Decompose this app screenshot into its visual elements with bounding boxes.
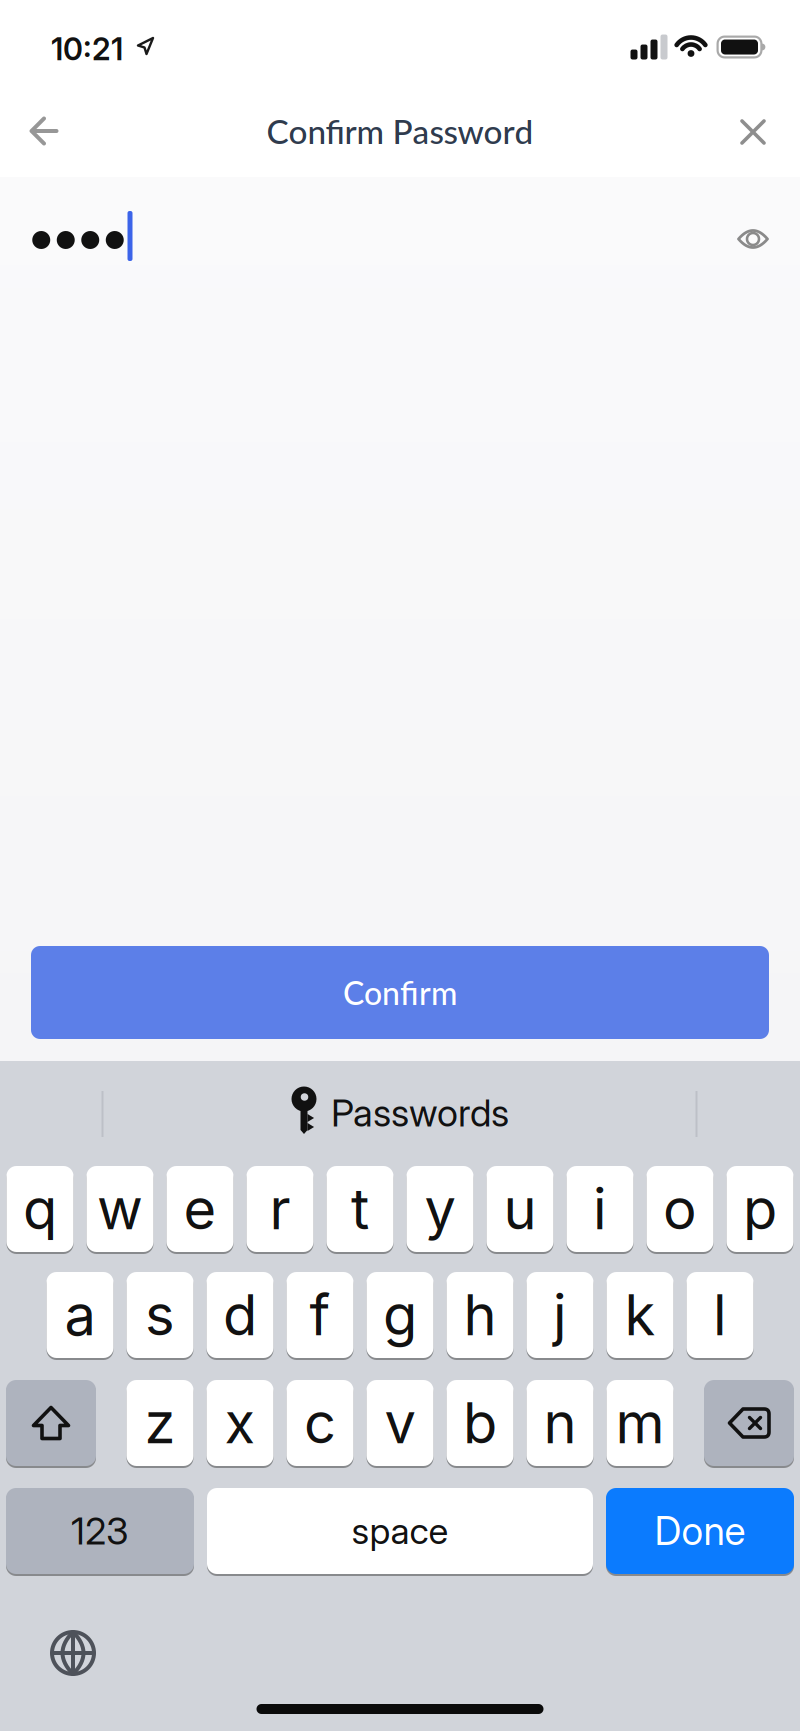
staticText: 10:21: [51, 30, 123, 67]
staticText: a: [64, 1281, 95, 1349]
button[interactable]: r: [246, 1166, 313, 1252]
staticText: n: [543, 1389, 576, 1457]
button[interactable]: k: [606, 1272, 673, 1358]
button[interactable]: y: [406, 1166, 473, 1252]
button[interactable]: g: [366, 1272, 433, 1358]
button[interactable]: n: [526, 1380, 593, 1466]
button[interactable]: j: [526, 1272, 593, 1358]
staticText: s: [145, 1281, 175, 1349]
button[interactable]: p: [726, 1166, 793, 1252]
button[interactable]: Passwords: [291, 1089, 509, 1137]
staticText: r: [269, 1175, 290, 1243]
button[interactable]: Delete: [704, 1380, 794, 1466]
button[interactable]: space: [207, 1488, 593, 1574]
button[interactable]: 123: [6, 1488, 194, 1574]
button[interactable]: Show password: [725, 211, 781, 267]
button[interactable]: Close: [723, 102, 783, 162]
button[interactable]: s: [126, 1272, 193, 1358]
staticText: i: [593, 1175, 607, 1243]
button[interactable]: b: [446, 1380, 513, 1466]
button[interactable]: t: [326, 1166, 393, 1252]
staticText: o: [663, 1175, 697, 1243]
staticText: b: [463, 1389, 497, 1457]
staticText: u: [503, 1175, 536, 1243]
button[interactable]: z: [126, 1380, 193, 1466]
button[interactable]: x: [206, 1380, 273, 1466]
button[interactable]: f: [286, 1272, 353, 1358]
staticText: c: [304, 1389, 336, 1457]
staticText: Done: [654, 1508, 745, 1554]
button[interactable]: o: [646, 1166, 713, 1252]
staticText: k: [624, 1281, 655, 1349]
button[interactable]: Done: [606, 1488, 794, 1574]
staticText: t: [351, 1175, 369, 1243]
staticText: y: [424, 1175, 455, 1243]
staticText: g: [383, 1281, 417, 1349]
staticText: Confirm: [343, 973, 457, 1012]
staticText: z: [144, 1389, 175, 1457]
button[interactable]: v: [366, 1380, 433, 1466]
staticText: x: [224, 1389, 255, 1457]
button[interactable]: d: [206, 1272, 273, 1358]
button[interactable]: a: [46, 1272, 113, 1358]
button[interactable]: h: [446, 1272, 513, 1358]
button[interactable]: Confirm: [31, 946, 769, 1039]
button[interactable]: Shift: [6, 1380, 96, 1466]
staticText: p: [743, 1175, 777, 1243]
staticText: 123: [71, 1508, 129, 1554]
staticText: f: [309, 1281, 330, 1349]
button[interactable]: l: [686, 1272, 753, 1358]
button[interactable]: e: [166, 1166, 233, 1252]
staticText: m: [615, 1389, 664, 1457]
staticText: l: [713, 1281, 727, 1349]
button[interactable]: Back: [14, 101, 74, 161]
button[interactable]: m: [606, 1380, 673, 1466]
staticText: Confirm Password: [266, 111, 533, 151]
staticText: h: [463, 1281, 496, 1349]
button[interactable]: i: [566, 1166, 633, 1252]
staticText: space: [351, 1509, 448, 1553]
button[interactable]: q: [6, 1166, 73, 1252]
button[interactable]: c: [286, 1380, 353, 1466]
staticText: w: [97, 1175, 143, 1243]
staticText: j: [553, 1281, 567, 1349]
staticText: v: [384, 1389, 415, 1457]
button[interactable]: w: [86, 1166, 153, 1252]
staticText: Passwords: [331, 1090, 509, 1136]
button[interactable]: u: [486, 1166, 553, 1252]
button[interactable]: Next keyboard: [41, 1621, 105, 1685]
staticText: d: [223, 1281, 257, 1349]
staticText: q: [23, 1175, 57, 1243]
staticText: e: [183, 1175, 216, 1243]
